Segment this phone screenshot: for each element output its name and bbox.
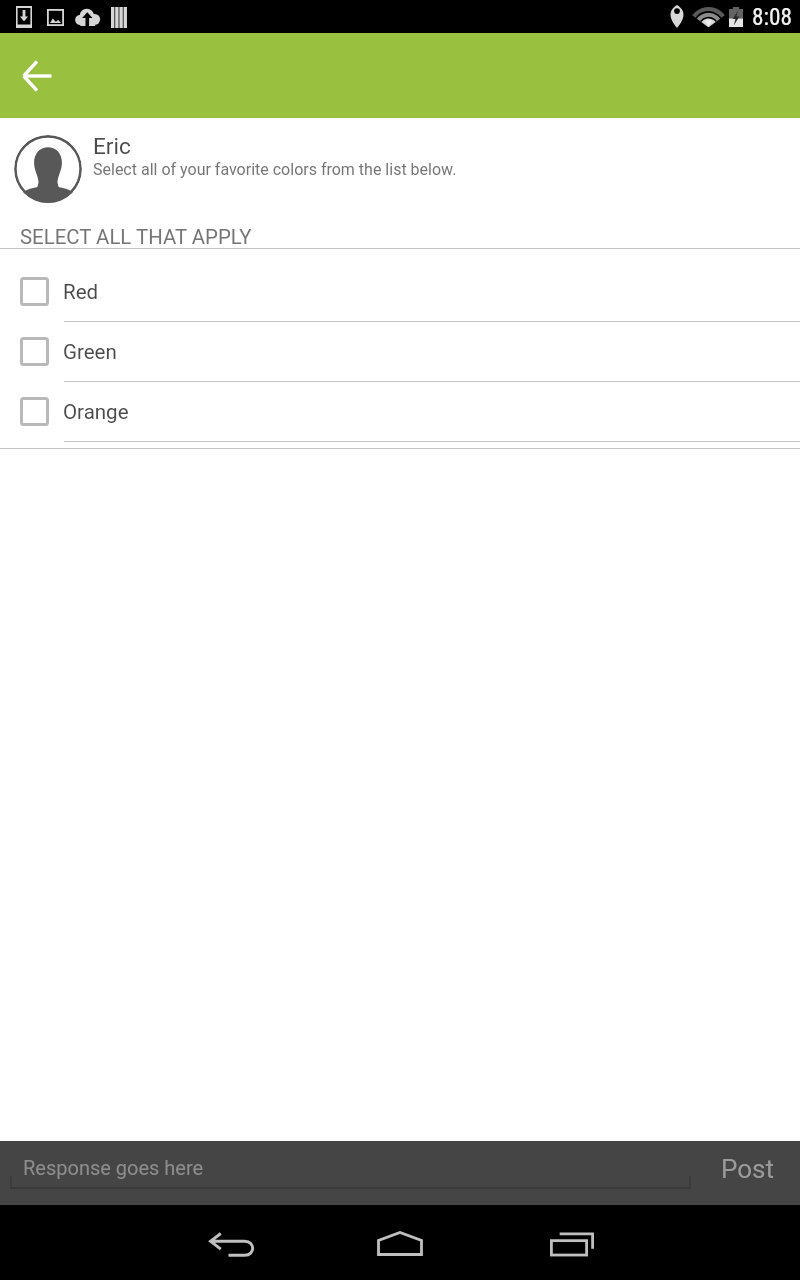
staticText: Response goes here [23, 1156, 204, 1179]
button[interactable]: Home [364, 1207, 436, 1279]
staticText: Green [63, 340, 117, 364]
staticText: 8:08 [752, 3, 792, 30]
button[interactable]: Red [0, 262, 800, 322]
button[interactable]: Orange [0, 382, 800, 442]
button[interactable]: Post [707, 1144, 788, 1194]
staticText: Select all of your favorite colors from … [93, 160, 457, 179]
staticText: SELECT ALL THAT APPLY [20, 225, 252, 249]
button[interactable]: Back [196, 1209, 268, 1280]
button[interactable]: Recent apps [536, 1208, 608, 1280]
staticText: Red [63, 280, 99, 304]
button[interactable]: Green [0, 322, 800, 382]
staticText: Eric [93, 133, 131, 159]
button[interactable]: Navigate up [9, 48, 65, 104]
button[interactable]: Response text field [10, 1150, 691, 1189]
staticText: Post [721, 1154, 774, 1184]
staticText: Orange [63, 400, 129, 424]
